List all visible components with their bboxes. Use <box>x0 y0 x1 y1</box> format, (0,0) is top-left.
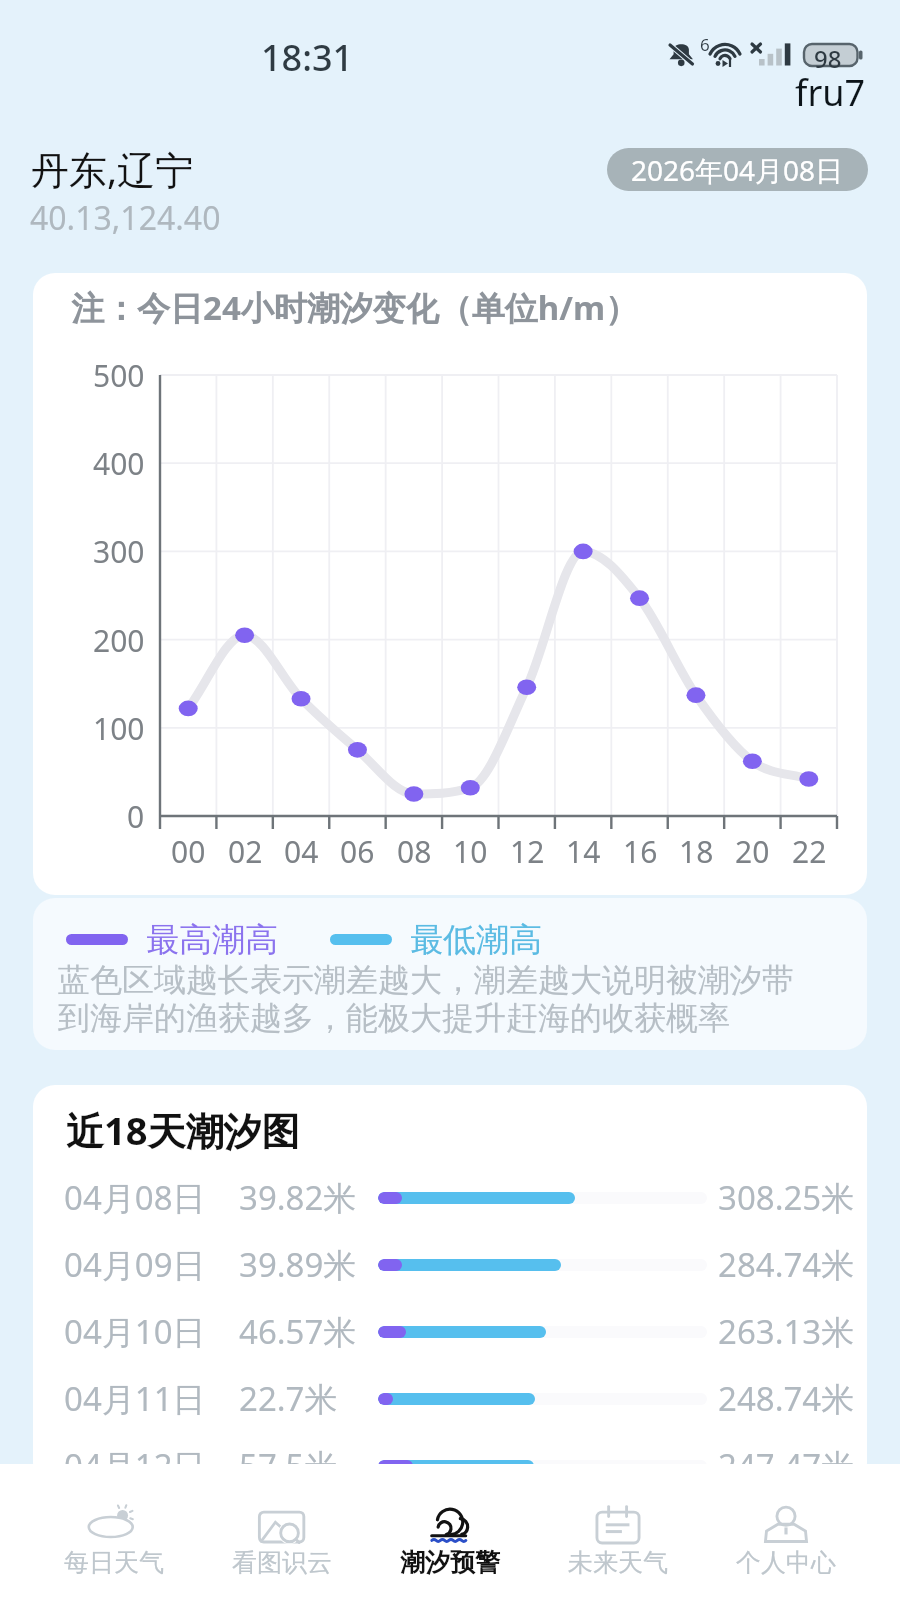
staticText: 20 <box>735 831 770 871</box>
staticText: 看图识云 <box>232 1547 332 1578</box>
staticText: 10 <box>453 831 488 871</box>
button[interactable]: 每日天气 <box>30 1464 198 1600</box>
button[interactable]: 04月08日 <box>33 1164 867 1231</box>
staticText: 04月08日 <box>64 1175 206 1220</box>
button[interactable]: 04月09日 <box>33 1231 867 1298</box>
button[interactable]: 个人中心 <box>702 1464 870 1600</box>
staticText: 04月10日 <box>64 1309 206 1354</box>
staticText: 04月09日 <box>64 1242 206 1287</box>
staticText: 注：今日24小时潮汐变化（单位h/m） <box>71 285 639 330</box>
staticText: 22.7米 <box>239 1376 338 1421</box>
staticText: 00 <box>171 831 206 871</box>
staticText: 248.74米 <box>718 1376 855 1421</box>
staticText: 300 <box>93 531 145 571</box>
staticText: 100 <box>93 708 145 748</box>
staticText: 蓝色区域越长表示潮差越大，潮差越大说明被潮汐带 <box>58 960 794 1000</box>
staticText: 06 <box>340 831 375 871</box>
staticText: 14 <box>566 831 601 871</box>
staticText: 40.13,124.40 <box>30 196 221 240</box>
staticText: 263.13米 <box>718 1309 855 1354</box>
staticText: 400 <box>93 443 145 483</box>
button[interactable]: 04月11日 <box>33 1365 867 1432</box>
staticText: 500 <box>93 355 145 395</box>
staticText: 22 <box>792 831 827 871</box>
staticText: 2026年04月08日 <box>631 151 844 189</box>
staticText: 18 <box>679 831 714 871</box>
staticText: 个人中心 <box>736 1547 836 1578</box>
staticText: 04 <box>284 831 319 871</box>
staticText: 04月12日 <box>64 1443 206 1485</box>
staticText: 04月11日 <box>64 1376 206 1421</box>
button[interactable]: 2026年04月08日 <box>607 148 868 191</box>
button[interactable]: 看图识云 <box>198 1464 366 1600</box>
staticText: 每日天气 <box>64 1547 164 1578</box>
staticText: 39.89米 <box>239 1242 357 1287</box>
staticText: 39.82米 <box>239 1175 357 1220</box>
staticText: 12 <box>510 831 545 871</box>
staticText: 247.47米 <box>718 1443 855 1485</box>
staticText: 02 <box>228 831 263 871</box>
staticText: 近18天潮汐图 <box>66 1104 300 1156</box>
staticText: 最低潮高 <box>410 919 542 961</box>
staticText: fru7 <box>795 68 866 117</box>
staticText: 308.25米 <box>718 1175 855 1220</box>
button[interactable]: 未来天气 <box>534 1464 702 1600</box>
staticText: 16 <box>623 831 658 871</box>
button[interactable]: 04月12日 <box>33 1432 867 1485</box>
staticText: 18:31 <box>261 33 354 82</box>
staticText: 0 <box>127 796 145 836</box>
staticText: 98 <box>814 42 842 75</box>
staticText: 潮汐预警 <box>400 1547 500 1578</box>
staticText: 46.57米 <box>239 1309 357 1354</box>
staticText: 6 <box>700 33 710 56</box>
staticText: 200 <box>93 620 145 660</box>
staticText: 丹东,辽宁 <box>31 143 194 195</box>
button[interactable]: 潮汐预警 <box>366 1464 534 1600</box>
staticText: 到海岸的渔获越多，能极大提升赶海的收获概率 <box>58 998 730 1038</box>
staticText: 284.74米 <box>718 1242 855 1287</box>
staticText: 未来天气 <box>568 1547 668 1578</box>
staticText: 57.5米 <box>239 1443 338 1485</box>
staticText: 08 <box>397 831 432 871</box>
button[interactable]: 04月10日 <box>33 1298 867 1365</box>
staticText: 最高潮高 <box>146 919 278 961</box>
